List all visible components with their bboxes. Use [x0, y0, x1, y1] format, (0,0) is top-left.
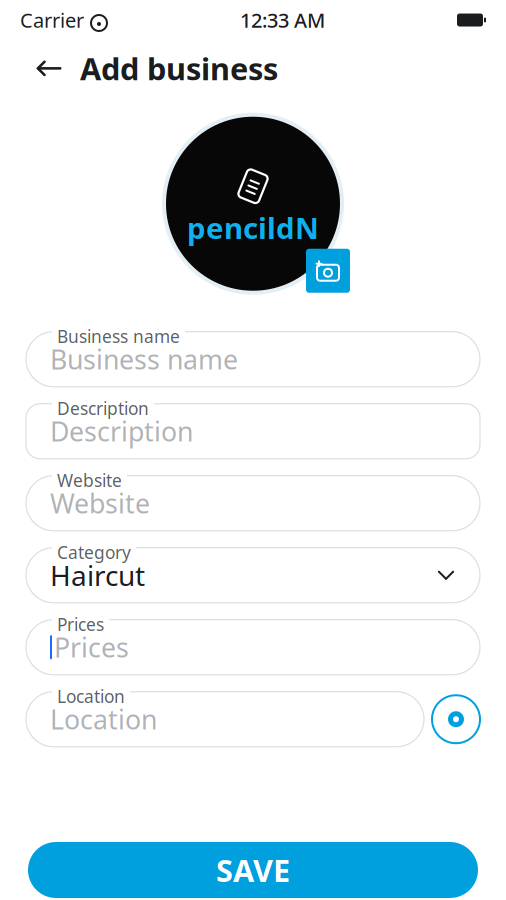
button[interactable]: SAVE: [28, 842, 478, 898]
staticText: Website: [57, 469, 122, 492]
staticText: Website: [50, 485, 150, 521]
staticText: pencildN: [187, 208, 319, 247]
staticText: Prices: [54, 629, 129, 665]
staticText: Prices: [57, 613, 104, 636]
staticText: Business name: [57, 325, 180, 348]
staticText: Location: [57, 685, 125, 708]
staticText: Description: [50, 413, 193, 449]
button[interactable]: Use current location: [432, 695, 480, 743]
button[interactable]: Change business photo: [158, 109, 348, 299]
staticText: Add business: [80, 48, 278, 89]
staticText: Category: [57, 541, 131, 564]
staticText: SAVE: [216, 850, 290, 890]
staticText: 12:33 AM: [240, 7, 325, 33]
button[interactable]: Haircut: [26, 541, 480, 603]
staticText: Haircut: [50, 557, 145, 594]
staticText: Business name: [50, 341, 238, 377]
staticText: Location: [50, 701, 157, 737]
staticText: Description: [57, 397, 149, 420]
button[interactable]: Back: [32, 51, 66, 85]
staticText: Carrier: [20, 7, 84, 33]
